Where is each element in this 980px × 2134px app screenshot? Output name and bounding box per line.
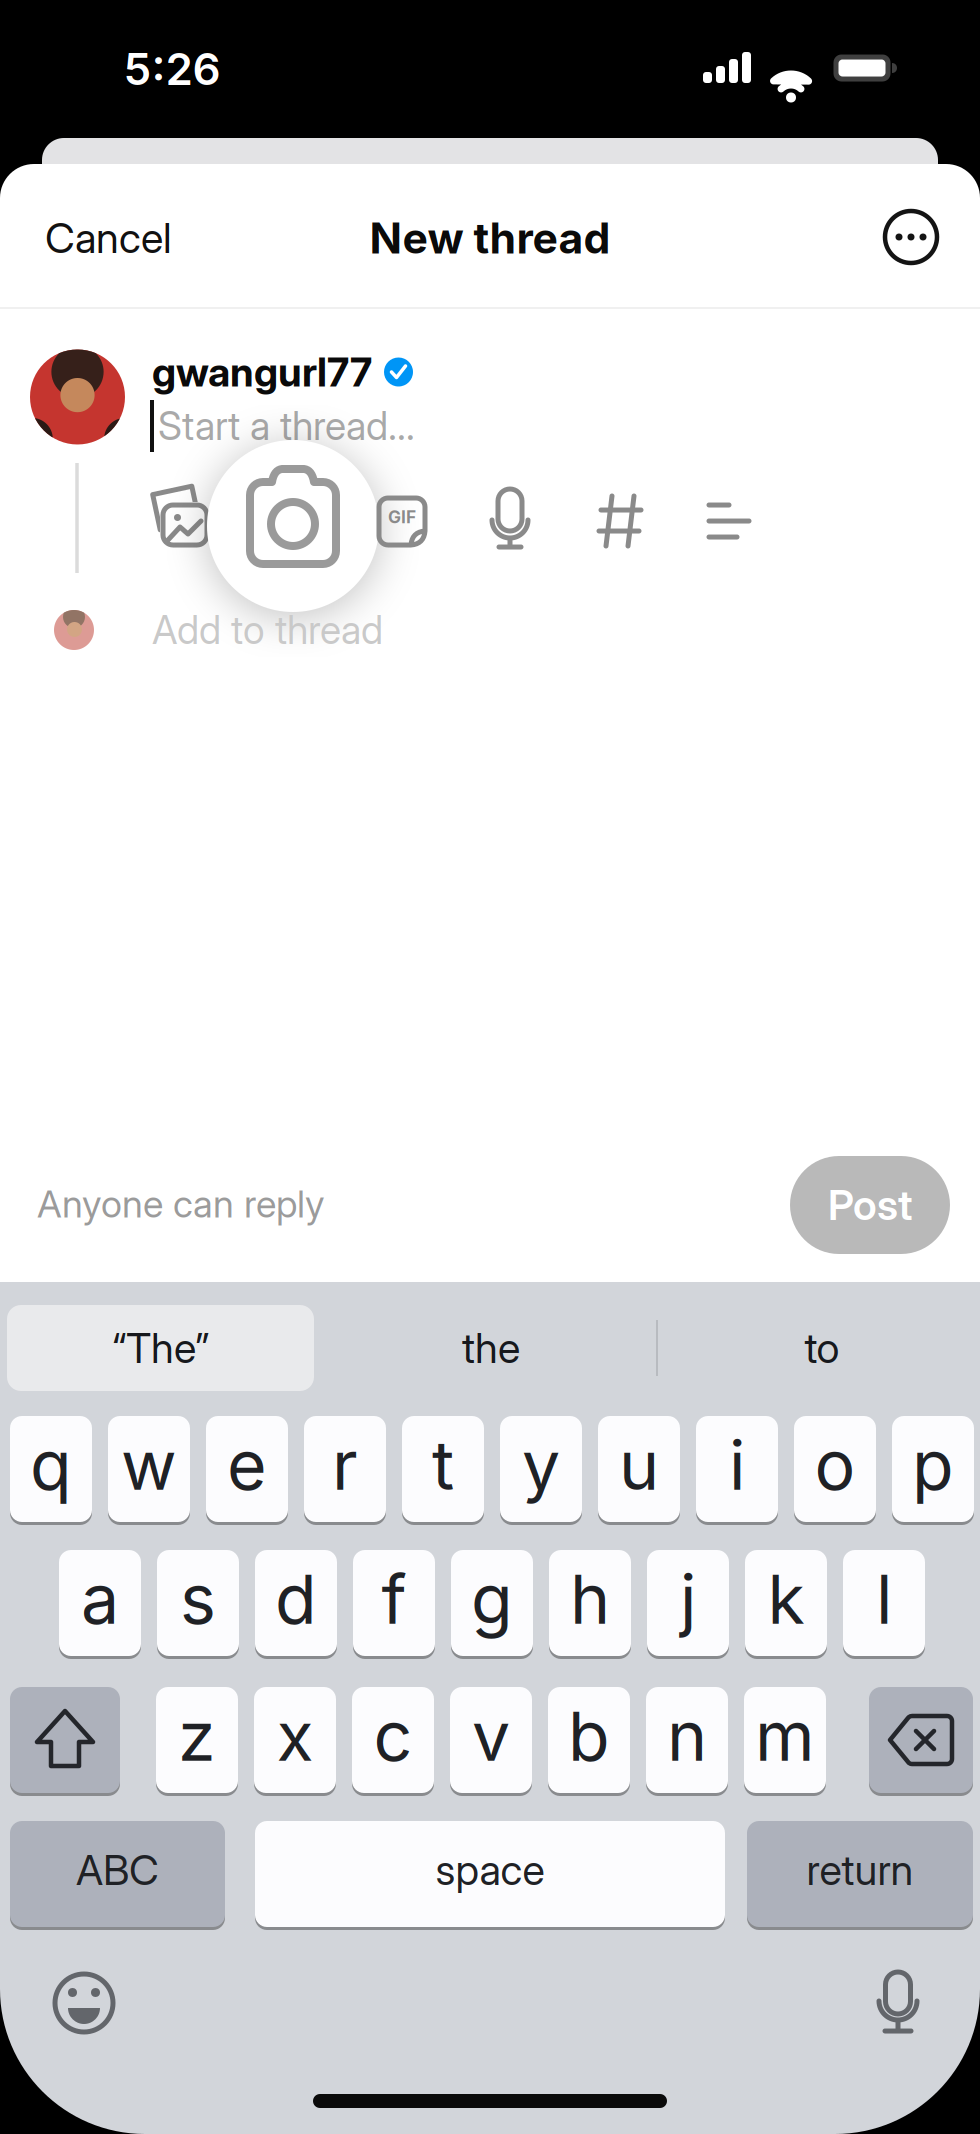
button[interactable] (205, 438, 381, 614)
staticText: Anyone can reply (37, 1182, 325, 1226)
staticText: to (804, 1324, 839, 1372)
staticText: u (619, 1425, 659, 1505)
button[interactable]: w (108, 1416, 190, 1522)
staticText: x (276, 1696, 313, 1776)
staticText: i (729, 1425, 745, 1505)
button[interactable] (876, 202, 946, 272)
button[interactable]: m (744, 1687, 826, 1793)
staticText: o (814, 1425, 855, 1505)
button[interactable]: y (500, 1416, 582, 1522)
staticText: New thread (369, 213, 610, 263)
staticText: return (806, 1846, 913, 1894)
staticText: n (667, 1696, 707, 1776)
button[interactable]: Add to thread (0, 585, 980, 675)
staticText: l (876, 1559, 892, 1639)
button[interactable]: return (747, 1821, 973, 1927)
staticText: k (767, 1559, 804, 1639)
button[interactable]: r (304, 1416, 386, 1522)
staticText: s (180, 1559, 216, 1639)
staticText: 5:26 (123, 43, 220, 95)
button[interactable] (575, 476, 665, 566)
button[interactable] (10, 1687, 120, 1793)
button[interactable]: p (892, 1416, 974, 1522)
button[interactable]: ABC (10, 1821, 225, 1927)
staticText: c (373, 1696, 412, 1776)
staticText: g (471, 1559, 513, 1639)
staticText: w (121, 1425, 177, 1505)
staticText: Start a thread… (158, 403, 415, 449)
button[interactable]: space (255, 1821, 725, 1927)
button[interactable]: g (451, 1550, 533, 1656)
staticText: Cancel (45, 214, 172, 262)
button[interactable]: o (794, 1416, 876, 1522)
button[interactable]: e (206, 1416, 288, 1522)
staticText: “The” (112, 1324, 209, 1372)
button[interactable] (133, 476, 223, 566)
button[interactable]: a (59, 1550, 141, 1656)
staticText: space (435, 1846, 544, 1894)
button[interactable] (39, 1958, 129, 2048)
button[interactable]: c (352, 1687, 434, 1793)
button[interactable]: t (402, 1416, 484, 1522)
button[interactable] (869, 1687, 973, 1793)
button[interactable]: v (450, 1687, 532, 1793)
button[interactable]: f (353, 1550, 435, 1656)
button[interactable]: d (255, 1550, 337, 1656)
staticText: Add to thread (152, 607, 383, 653)
button[interactable]: i (696, 1416, 778, 1522)
button[interactable]: h (549, 1550, 631, 1656)
staticText: GIF (388, 507, 416, 527)
staticText: q (30, 1425, 72, 1505)
staticText: z (178, 1696, 216, 1776)
staticText: v (472, 1696, 510, 1776)
button[interactable]: b (548, 1687, 630, 1793)
staticText: j (680, 1559, 696, 1639)
button[interactable]: GIF (357, 476, 447, 566)
staticText: a (81, 1559, 119, 1639)
staticText: h (570, 1559, 610, 1639)
button[interactable]: j (647, 1550, 729, 1656)
staticText: Post (828, 1181, 912, 1229)
button[interactable]: “The” (7, 1305, 314, 1391)
button[interactable]: x (254, 1687, 336, 1793)
button[interactable]: k (745, 1550, 827, 1656)
button[interactable]: Post (790, 1156, 950, 1254)
staticText: ABC (76, 1846, 159, 1894)
button[interactable] (465, 474, 555, 564)
staticText: gwangurl77 (152, 348, 372, 396)
button[interactable]: to (682, 1305, 962, 1391)
staticText: r (332, 1425, 358, 1505)
staticText: y (522, 1425, 560, 1505)
button[interactable]: l (843, 1550, 925, 1656)
button[interactable] (853, 1958, 943, 2048)
staticText: e (227, 1425, 267, 1505)
staticText: the (462, 1324, 520, 1372)
button[interactable]: Cancel (45, 193, 265, 283)
button[interactable]: q (10, 1416, 92, 1522)
staticText: m (755, 1696, 815, 1776)
staticText: p (912, 1425, 954, 1505)
button[interactable] (684, 476, 774, 566)
button[interactable]: s (157, 1550, 239, 1656)
staticText: d (275, 1559, 317, 1639)
button[interactable]: u (598, 1416, 680, 1522)
button[interactable]: the (351, 1305, 631, 1391)
staticText: f (381, 1559, 406, 1639)
button[interactable]: z (156, 1687, 238, 1793)
button[interactable]: n (646, 1687, 728, 1793)
staticText: b (568, 1696, 610, 1776)
staticText: t (432, 1425, 454, 1505)
